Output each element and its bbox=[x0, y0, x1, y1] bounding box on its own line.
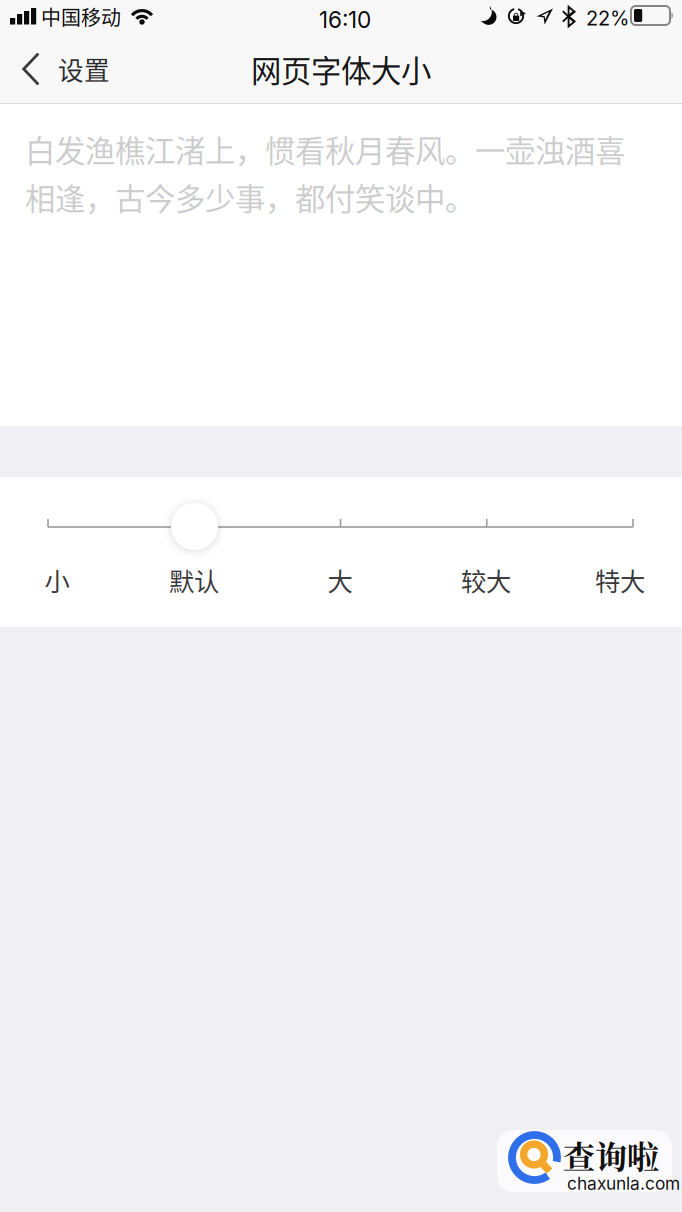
staticText: 网页字体大小 bbox=[251, 47, 431, 91]
button[interactable]: 小 bbox=[0, 560, 122, 600]
button[interactable]: 较大 bbox=[421, 560, 551, 600]
staticText: 较大 bbox=[461, 562, 511, 598]
button[interactable]: 大 bbox=[275, 560, 405, 600]
button[interactable]: Font size slider handle bbox=[171, 503, 218, 550]
staticText: 小 bbox=[44, 562, 69, 598]
staticText: 特大 bbox=[595, 562, 645, 598]
staticText: 中国移动 bbox=[41, 2, 121, 31]
staticText: 默认 bbox=[169, 562, 219, 598]
staticText: 设置 bbox=[58, 50, 110, 88]
button[interactable]: 设置 bbox=[0, 44, 126, 94]
staticText: 大 bbox=[327, 562, 352, 598]
staticText: 查询啦 bbox=[563, 1132, 659, 1178]
button[interactable]: 特大 bbox=[555, 560, 682, 600]
staticText: chaxunla.com bbox=[567, 1173, 680, 1194]
staticText: 白发渔樵江渚上，惯看秋月春风。一壶浊酒喜相逢，古今多少事，都付笑谈中。 bbox=[25, 127, 625, 219]
button[interactable]: 默认 bbox=[129, 560, 259, 600]
staticText: 16:10 bbox=[319, 6, 371, 33]
staticText: 22% bbox=[586, 6, 629, 30]
